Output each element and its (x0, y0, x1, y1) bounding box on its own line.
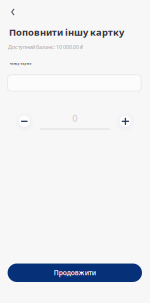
button[interactable]: Decrease amount (18, 115, 30, 127)
button[interactable]: Back (6, 5, 20, 19)
staticText: Номер картки (10, 62, 32, 65)
staticText: 0 (72, 112, 77, 124)
staticText: Продовжити (54, 268, 96, 277)
staticText: Поповнити іншу картку (9, 26, 124, 38)
button[interactable]: Продовжити (8, 263, 142, 282)
staticText: Доступний баланс: 10 000.00 ₴ (8, 43, 83, 50)
button[interactable]: Increase amount (120, 115, 131, 127)
